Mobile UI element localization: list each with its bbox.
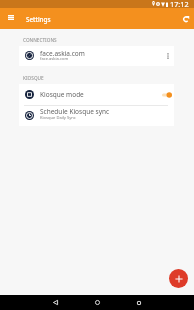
staticText: face.askia.com xyxy=(40,56,69,62)
button[interactable]: Recent apps xyxy=(128,295,150,310)
button[interactable]: Menu xyxy=(2,10,20,28)
button[interactable] xyxy=(19,106,174,126)
staticText: CONNECTIONS xyxy=(23,37,57,43)
staticText: KIOSQUE xyxy=(23,75,44,81)
staticText: Settings xyxy=(26,15,51,24)
button[interactable]: Home xyxy=(86,295,108,310)
button[interactable] xyxy=(19,84,174,105)
button[interactable]: More options xyxy=(162,46,174,66)
button[interactable]: Refresh xyxy=(177,10,194,27)
staticText: Schedule Kiosque sync xyxy=(40,107,110,116)
button[interactable]: Kiosque mode xyxy=(158,86,175,103)
button[interactable]: Back xyxy=(44,295,66,310)
staticText: 17:12 xyxy=(170,0,189,9)
button[interactable]: Add xyxy=(169,269,188,288)
staticText: Kiosque mode xyxy=(40,90,84,99)
staticText: Kiosque Daily Sync xyxy=(40,115,76,121)
staticText: face.askia.com xyxy=(40,49,85,58)
button[interactable] xyxy=(19,46,174,66)
